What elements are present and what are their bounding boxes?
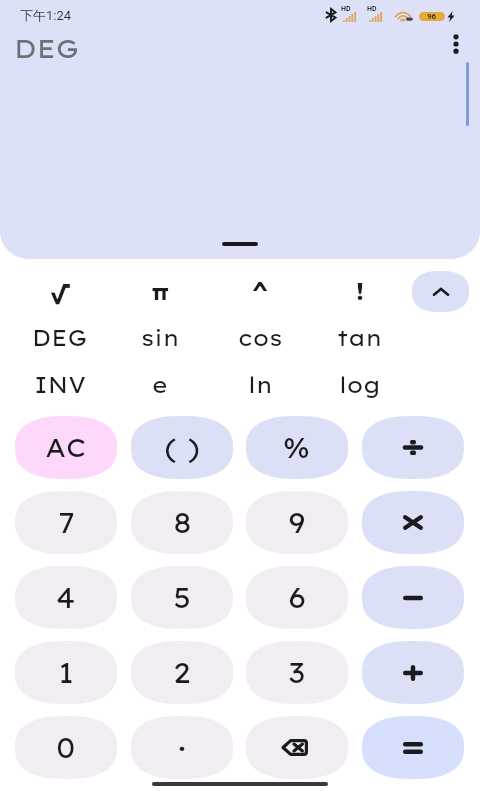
staticText: 2 (173, 655, 191, 690)
staticText: 5 (173, 580, 192, 615)
button[interactable]: AC (15, 416, 117, 479)
staticText: DEG (32, 324, 88, 352)
button[interactable] (362, 491, 464, 554)
staticText: 1 (58, 655, 74, 690)
staticText: π (151, 277, 170, 306)
button[interactable]: 0 (15, 716, 117, 779)
button[interactable]: ( ) (131, 416, 233, 479)
staticText: DEG (14, 32, 80, 65)
button[interactable]: DEG (10, 315, 110, 361)
button[interactable] (362, 716, 464, 779)
staticText: ^ (252, 277, 269, 306)
button[interactable]: 2 (131, 641, 233, 704)
staticText: HD (367, 5, 377, 13)
button[interactable]: 6 (246, 566, 348, 629)
staticText: sin (141, 324, 180, 352)
staticText: 7 (58, 505, 75, 540)
button[interactable]: 5 (131, 566, 233, 629)
staticText: ( ) (164, 431, 201, 465)
staticText: INV (34, 371, 86, 399)
button[interactable]: 9 (246, 491, 348, 554)
button[interactable] (246, 716, 348, 779)
button[interactable] (362, 566, 464, 629)
staticText: HD (341, 5, 351, 13)
button[interactable] (362, 416, 464, 479)
staticText: · (177, 730, 187, 765)
button[interactable]: cos (210, 315, 310, 361)
button[interactable]: e (110, 362, 210, 408)
button[interactable]: ! (310, 268, 410, 314)
staticText: AC (45, 431, 87, 464)
button[interactable]: π (110, 268, 210, 314)
button[interactable]: ^ (210, 268, 310, 314)
button[interactable]: tan (310, 315, 410, 361)
staticText: ln (248, 371, 273, 399)
button[interactable]: INV (10, 362, 110, 408)
button[interactable]: Collapse (412, 271, 469, 312)
button[interactable]: % (246, 416, 348, 479)
button[interactable]: log (310, 362, 410, 408)
button[interactable]: sin (110, 315, 210, 361)
staticText: log (339, 371, 381, 399)
button[interactable]: Expand (222, 242, 258, 246)
staticText: 9 (288, 505, 306, 540)
staticText: cos (238, 324, 283, 352)
button[interactable]: 4 (15, 566, 117, 629)
staticText: % (283, 430, 311, 465)
button[interactable]: · (131, 716, 233, 779)
button[interactable]: ln (210, 362, 310, 408)
staticText: ! (355, 277, 365, 306)
staticText: e (152, 371, 168, 399)
button[interactable]: 7 (15, 491, 117, 554)
staticText: 0 (56, 730, 76, 765)
staticText: 6 (288, 580, 307, 615)
staticText: tan (337, 324, 383, 352)
button[interactable]: 8 (131, 491, 233, 554)
staticText: 4 (56, 580, 76, 615)
staticText: 8 (173, 505, 192, 540)
staticText: 96 (427, 12, 437, 21)
button[interactable]: √ (10, 268, 110, 314)
staticText: √ (50, 277, 71, 306)
staticText: 3 (288, 655, 306, 690)
staticText: 下午1:24 (20, 7, 72, 23)
button[interactable] (362, 641, 464, 704)
button[interactable]: More options (440, 28, 472, 60)
button[interactable]: 1 (15, 641, 117, 704)
button[interactable]: 3 (246, 641, 348, 704)
